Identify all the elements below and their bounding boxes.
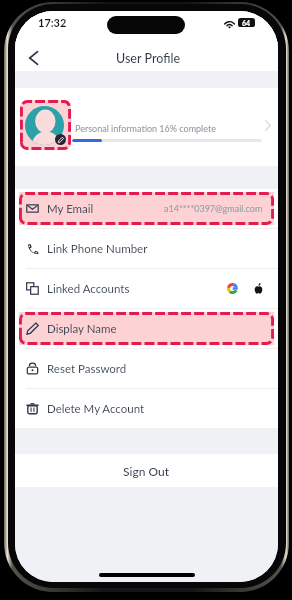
staticText: Delete My Account <box>47 402 145 416</box>
button[interactable]: Sign Out <box>15 454 278 487</box>
staticText: Link Phone Number <box>47 242 148 256</box>
staticText: Sign Out <box>123 464 170 478</box>
button[interactable]: Delete My Account <box>15 389 278 428</box>
button[interactable]: Link Phone Number <box>15 229 278 268</box>
button[interactable]: Display Name <box>15 309 278 348</box>
staticText: a14****0397@gmail.com <box>164 203 263 214</box>
button[interactable]: Back <box>20 44 46 72</box>
button[interactable]: Edit profile photo <box>20 100 71 150</box>
staticText: Reset Password <box>47 362 127 376</box>
button[interactable]: Reset Password <box>15 349 278 388</box>
button[interactable]: Linked Accounts <box>15 269 278 308</box>
staticText: 17:32 <box>38 16 67 29</box>
staticText: 64 <box>242 19 251 27</box>
staticText: My Email <box>47 202 94 216</box>
staticText: Display Name <box>47 322 117 336</box>
staticText: Linked Accounts <box>47 282 130 296</box>
button[interactable]: My Email <box>15 189 278 228</box>
staticText: Personal information 16% complete <box>75 123 216 134</box>
staticText: User Profile <box>116 51 181 66</box>
